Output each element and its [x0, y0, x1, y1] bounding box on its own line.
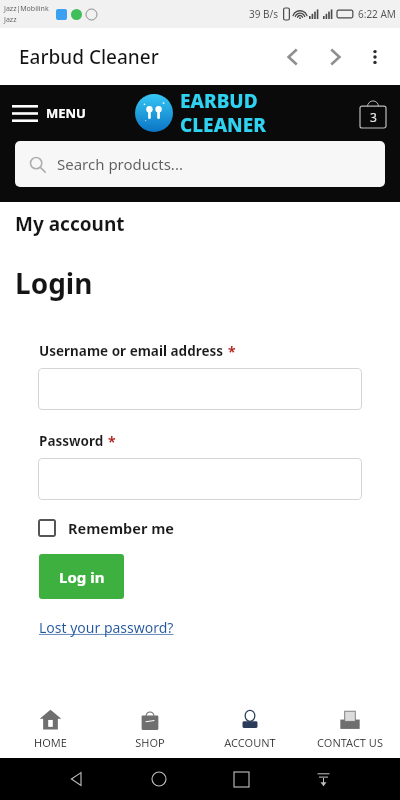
staticText: ACCOUNT	[224, 735, 276, 750]
button[interactable]: Search products...	[15, 141, 385, 187]
staticText: *	[228, 342, 236, 361]
staticText: HOME	[34, 735, 67, 750]
button[interactable]: CONTACT US	[300, 700, 400, 758]
staticText: Password	[39, 432, 104, 450]
staticText: *	[108, 432, 116, 451]
button[interactable]: SHOP	[100, 700, 200, 758]
staticText: Earbud Cleaner	[19, 44, 159, 70]
button[interactable]: Forward	[314, 36, 356, 78]
staticText: CONTACT US	[317, 735, 383, 750]
staticText: Login	[15, 264, 93, 302]
staticText: Jazz	[4, 15, 17, 25]
staticText: My account	[15, 211, 125, 237]
button[interactable]: Back	[272, 36, 314, 78]
button[interactable]: Recent apps	[224, 762, 258, 796]
button[interactable]: More options	[356, 38, 394, 76]
staticText: SHOP	[135, 735, 165, 750]
button[interactable]	[38, 368, 362, 410]
staticText: 3	[370, 109, 377, 125]
button[interactable]: Home	[142, 762, 176, 796]
staticText: Lost your password?	[39, 618, 174, 637]
staticText: EARBUD	[180, 88, 258, 114]
staticText: 6:22 AM	[358, 7, 396, 21]
button[interactable]: MENU	[12, 104, 86, 122]
button[interactable]: Hide navigation bar	[306, 762, 340, 796]
staticText: Search products...	[57, 154, 183, 174]
staticText: CLEANER	[180, 112, 266, 138]
button[interactable]: Log in	[39, 554, 124, 599]
staticText: 39 B/s	[249, 7, 279, 21]
button[interactable]	[38, 458, 362, 500]
staticText: Jazz|Mobilink	[4, 4, 49, 14]
staticText: Remember me	[68, 518, 174, 538]
staticText: Username or email address	[39, 342, 224, 360]
button[interactable]: ACCOUNT	[200, 700, 300, 758]
button[interactable]: HOME	[0, 700, 100, 758]
button[interactable]: Back	[60, 762, 94, 796]
staticText: MENU	[46, 104, 86, 122]
button[interactable]: Lost your password?	[39, 618, 174, 637]
staticText: Log in	[59, 567, 105, 587]
button[interactable]: Cart, 3 items	[360, 98, 386, 128]
button[interactable]: Remember me	[38, 518, 174, 538]
